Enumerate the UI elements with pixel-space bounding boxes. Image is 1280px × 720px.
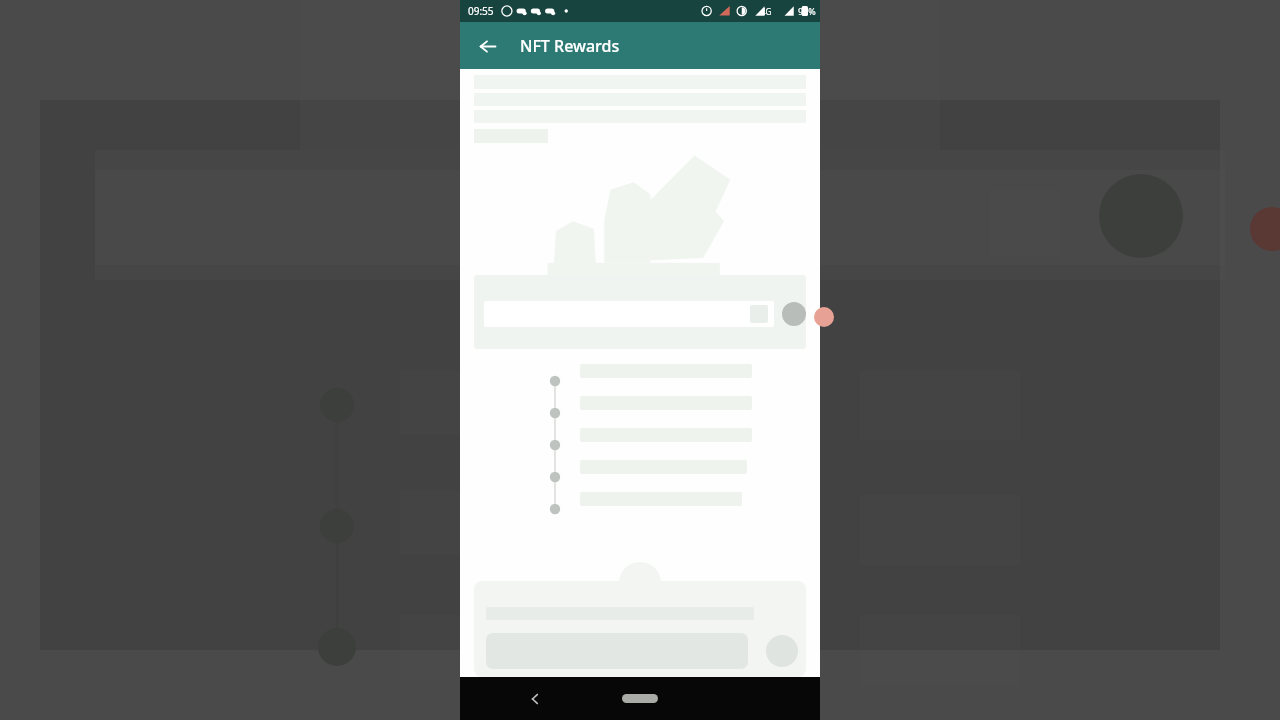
button[interactable]: More (770, 633, 802, 665)
button[interactable]: Profile (782, 302, 806, 326)
staticText: 09:55 (468, 4, 494, 18)
staticText: NFT Rewards (520, 35, 620, 57)
staticText: 92% (798, 5, 816, 17)
button[interactable]: Home (622, 694, 658, 703)
button[interactable]: Search (484, 301, 774, 327)
staticText: 4G (761, 6, 772, 17)
button[interactable]: Back (470, 29, 504, 63)
button[interactable]: Back (518, 682, 552, 716)
button[interactable]: Primary action (480, 633, 762, 667)
